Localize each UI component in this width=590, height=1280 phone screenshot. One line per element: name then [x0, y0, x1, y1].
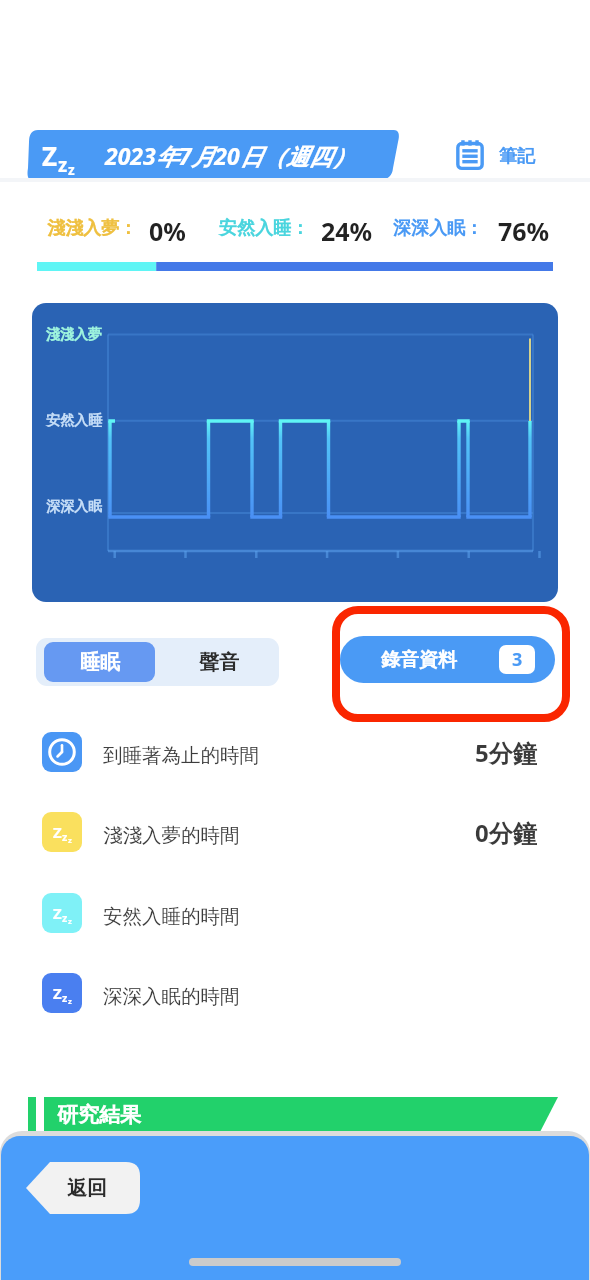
- staticText: 深深入眠：: [393, 217, 483, 240]
- staticText: 5分鐘: [475, 736, 537, 769]
- staticText: z: [62, 910, 68, 925]
- staticText: 淺淺入夢：: [47, 217, 137, 240]
- staticText: 淺淺入夢: [46, 326, 102, 344]
- staticText: z: [58, 152, 68, 177]
- staticText: 安然入睡: [46, 412, 102, 430]
- staticText: 2023年7月20日（週四）: [105, 140, 355, 171]
- staticText: 返回: [67, 1176, 107, 1201]
- button[interactable]: 到睡著為止的時間: [0, 712, 590, 792]
- staticText: 聲音: [199, 650, 239, 675]
- staticText: z: [68, 916, 72, 927]
- staticText: Z: [53, 822, 62, 842]
- staticText: z: [62, 990, 68, 1005]
- staticText: z: [68, 996, 72, 1007]
- staticText: z: [62, 829, 68, 844]
- staticText: 筆記: [499, 145, 535, 168]
- staticText: 淺淺入夢的時間: [103, 823, 240, 848]
- staticText: z: [68, 161, 75, 179]
- staticText: 76%: [498, 214, 550, 248]
- button[interactable]: Notes: [448, 132, 546, 180]
- button[interactable]: Z: [26, 130, 401, 180]
- staticText: Z: [53, 903, 62, 923]
- staticText: 到睡著為止的時間: [103, 743, 259, 768]
- button[interactable]: Z: [0, 873, 590, 953]
- staticText: 3: [512, 647, 523, 672]
- staticText: 安然入睡：: [219, 217, 309, 240]
- staticText: 深深入眠的時間: [103, 984, 240, 1009]
- button[interactable]: 睡眠: [44, 642, 155, 682]
- staticText: 0分鐘: [475, 816, 537, 849]
- staticText: 0%: [149, 214, 186, 248]
- staticText: 24%: [321, 214, 373, 248]
- button[interactable]: Z: [0, 953, 590, 1033]
- staticText: 安然入睡的時間: [103, 904, 240, 929]
- staticText: Z: [53, 983, 62, 1003]
- button[interactable]: 錄音資料: [340, 636, 555, 683]
- staticText: 錄音資料: [381, 648, 457, 672]
- button[interactable]: 聲音: [159, 638, 279, 686]
- staticText: Z: [42, 138, 58, 173]
- staticText: 研究結果: [57, 1102, 141, 1128]
- staticText: 深深入眠: [46, 498, 102, 516]
- button[interactable]: Z: [0, 792, 590, 872]
- staticText: 睡眠: [80, 650, 120, 675]
- button[interactable]: 返回: [26, 1162, 140, 1214]
- staticText: z: [68, 835, 72, 846]
